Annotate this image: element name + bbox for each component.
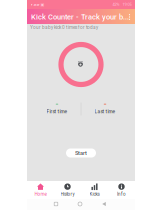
button[interactable]: Recents bbox=[50, 198, 62, 209]
staticText: Start bbox=[75, 150, 87, 156]
button[interactable]: Kicks bbox=[81, 181, 108, 199]
button[interactable]: Start bbox=[66, 148, 96, 157]
staticText: First time bbox=[46, 109, 67, 114]
staticText: ▾ ▰▰ ▣ bbox=[30, 2, 44, 7]
button[interactable]: Back bbox=[98, 198, 110, 209]
button[interactable]: Home bbox=[74, 198, 86, 209]
staticText: Last time bbox=[94, 109, 115, 114]
staticText: Info bbox=[117, 191, 126, 197]
button[interactable]: History bbox=[54, 181, 81, 199]
staticText: Home bbox=[34, 191, 46, 197]
staticText: 42% 19:05 bbox=[112, 2, 131, 7]
staticText: Kick Counter - Track your b... bbox=[31, 13, 129, 21]
button[interactable]: Home bbox=[27, 181, 54, 199]
button[interactable]: Info bbox=[108, 181, 135, 199]
staticText: Your baby kick 0 times for today bbox=[30, 25, 98, 30]
staticText: Kicks bbox=[89, 191, 99, 197]
button[interactable]: More options bbox=[125, 10, 134, 24]
staticText: History bbox=[60, 191, 74, 197]
